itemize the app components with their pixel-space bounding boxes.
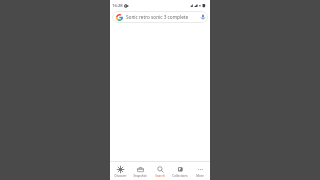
button[interactable]: Voice search (200, 14, 206, 20)
staticText: Discover (114, 174, 127, 178)
button[interactable]: Snapshot (130, 162, 150, 180)
staticText: Snapshot (133, 174, 147, 178)
staticText: Collections (172, 174, 188, 178)
button[interactable]: More (190, 162, 210, 180)
button[interactable]: Sonic retro sonic 3 complete (112, 11, 208, 23)
staticText: 16:28 (112, 3, 123, 9)
button[interactable]: Discover (110, 162, 130, 180)
staticText: Search (155, 174, 165, 178)
staticText: More (196, 174, 204, 178)
button[interactable]: Collections (170, 162, 190, 180)
button[interactable]: Search (150, 162, 170, 180)
staticText: Sonic retro sonic 3 complete (126, 14, 189, 20)
